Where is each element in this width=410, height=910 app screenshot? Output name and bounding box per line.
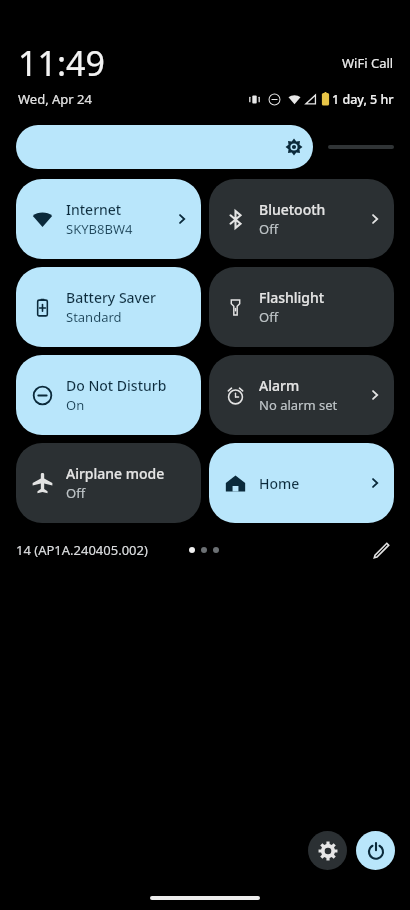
staticText: Do Not Disturb	[66, 376, 167, 395]
button[interactable]: Settings	[308, 831, 347, 870]
staticText: 1 day, 5 hr	[332, 91, 394, 108]
button[interactable]: Brightness	[16, 125, 394, 169]
staticText: Wed, Apr 24	[18, 90, 92, 108]
staticText: SKYB8BW4	[66, 220, 133, 238]
staticText: Standard	[66, 308, 122, 326]
staticText: Off	[259, 308, 279, 326]
button[interactable]: Home	[209, 443, 394, 523]
staticText: Battery Saver	[66, 288, 156, 307]
staticText: Off	[66, 484, 86, 502]
staticText: WiFi Call	[342, 54, 394, 72]
staticText: No alarm set	[259, 396, 338, 414]
staticText: Home	[259, 474, 300, 493]
button[interactable]: Bluetooth	[209, 179, 394, 259]
staticText: Flashlight	[259, 288, 325, 307]
button[interactable]: Internet	[16, 179, 201, 259]
button[interactable]: Do Not Disturb	[16, 355, 201, 435]
staticText: Internet	[66, 200, 122, 219]
button[interactable]: Edit tiles	[364, 535, 398, 565]
button[interactable]: Airplane mode	[16, 443, 201, 523]
button[interactable]: Power	[356, 831, 395, 870]
staticText: 11:49	[18, 40, 105, 86]
staticText: Off	[259, 220, 279, 238]
button[interactable]: Battery Saver	[16, 267, 201, 347]
staticText: Alarm	[259, 376, 300, 395]
staticText: On	[66, 396, 85, 414]
button[interactable]: Flashlight	[209, 267, 394, 347]
button[interactable]: Alarm	[209, 355, 394, 435]
staticText: Airplane mode	[66, 464, 165, 483]
staticText: Bluetooth	[259, 200, 326, 219]
staticText: 14 (AP1A.240405.002)	[16, 541, 148, 559]
